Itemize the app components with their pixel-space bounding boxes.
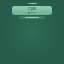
button[interactable]: Activity xyxy=(0,2,64,5)
button[interactable]: 7,248 xyxy=(12,6,52,15)
staticText: steps xyxy=(31,11,36,14)
button[interactable]: More details xyxy=(19,16,45,19)
staticText: 7,248 xyxy=(28,7,36,11)
staticText: Activity xyxy=(28,2,37,5)
